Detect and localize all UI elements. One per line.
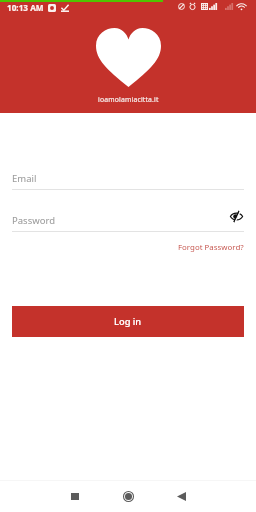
- staticText: ioamolamiacitta.it: [98, 95, 159, 104]
- staticText: Log in: [114, 315, 142, 328]
- button[interactable]: Show password: [226, 206, 246, 226]
- staticText: 10:13 AM: [7, 2, 44, 13]
- staticText: Forgot Password?: [178, 242, 244, 253]
- button[interactable]: Forgot Password?: [178, 240, 244, 255]
- staticText: Email: [12, 172, 244, 185]
- button[interactable]: Recents: [57, 481, 93, 512]
- button[interactable]: Back: [163, 481, 199, 512]
- staticText: Password: [12, 214, 224, 227]
- button[interactable]: Log in: [12, 306, 244, 337]
- button[interactable]: Home: [110, 481, 146, 512]
